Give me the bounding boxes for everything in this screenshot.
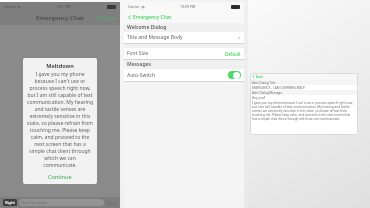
- staticText: I gave you my phone because I can't use …: [27, 71, 93, 169]
- staticText: Settings: [97, 15, 117, 22]
- staticText: Title and Message Body: [127, 34, 183, 41]
- button[interactable]: Continue: [27, 173, 93, 180]
- staticText: Emergency Chat: [36, 14, 84, 22]
- staticText: Back: [256, 75, 264, 79]
- staticText: Hey you!!: [252, 96, 266, 100]
- staticText: Auto-Switch: [127, 72, 155, 79]
- button[interactable]: Back: [250, 73, 358, 80]
- button[interactable]: Settings: [97, 15, 117, 22]
- button[interactable]: Font Size: [124, 48, 244, 59]
- staticText: Right: [5, 200, 15, 205]
- staticText: Messages: [127, 61, 151, 68]
- staticText: Continue: [48, 173, 72, 180]
- button[interactable]: Title and Message Body: [124, 32, 244, 43]
- staticText: EMERGENCY - I AM OVERWHELMED!!: [252, 86, 306, 90]
- staticText: Alert Dialog Message: [252, 91, 282, 95]
- staticText: New Message: [21, 200, 48, 205]
- button[interactable]: EMERGENCY - I AM OVERWHELMED!!: [250, 85, 358, 90]
- staticText: Alert Dialog Title: [252, 81, 276, 85]
- staticText: Carrier: [4, 4, 16, 9]
- staticText: Carrier: [128, 4, 140, 9]
- staticText: 9:41 PM: [57, 4, 71, 9]
- staticText: Font Size: [127, 50, 149, 57]
- button[interactable]: New Message: [19, 199, 104, 206]
- staticText: Meltdown: [46, 62, 74, 69]
- button[interactable]: Send: [106, 200, 117, 206]
- button[interactable]: Hey you!!: [250, 95, 358, 100]
- staticText: 10:09 PM: [180, 4, 196, 9]
- other: Back: [252, 75, 255, 78]
- staticText: Welcome Dialog: [127, 24, 167, 31]
- button[interactable]: Auto-Switch: [124, 69, 244, 81]
- button[interactable]: Emergency Chat: [124, 11, 244, 23]
- staticText: Emergency Chat: [133, 14, 172, 21]
- staticText: Send: [106, 200, 117, 206]
- staticText: Default: [225, 51, 241, 57]
- button[interactable]: Right: [3, 199, 17, 206]
- staticText: I gave you my phone because I can't use …: [252, 101, 356, 121]
